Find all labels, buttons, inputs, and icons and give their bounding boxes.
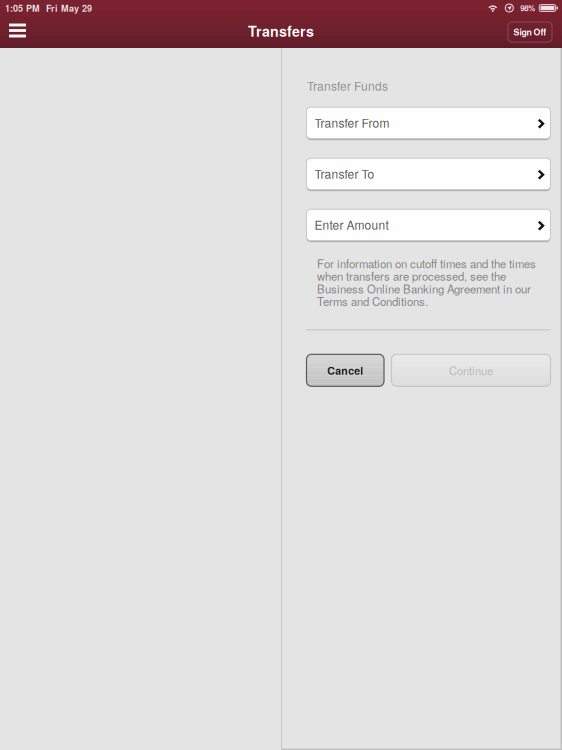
button[interactable]: Transfer To: [306, 158, 550, 191]
staticText: Fri May 29: [46, 1, 92, 14]
button[interactable]: Menu: [0, 18, 38, 46]
staticText: Transfer From: [314, 114, 389, 131]
button[interactable]: Sign Off: [508, 22, 552, 42]
staticText: For information on cutoff times and the …: [317, 255, 536, 309]
button[interactable]: Transfer From: [306, 107, 550, 140]
staticText: Cancel: [327, 363, 363, 378]
staticText: Continue: [449, 362, 493, 378]
button[interactable]: Cancel: [306, 354, 384, 386]
staticText: Transfer Funds: [307, 77, 388, 94]
staticText: 98%: [520, 2, 535, 14]
button[interactable]: Enter Amount: [306, 209, 550, 242]
staticText: Transfers: [248, 21, 314, 41]
staticText: Sign Off: [513, 26, 546, 38]
staticText: 1:05 PM: [5, 1, 40, 14]
staticText: Transfer To: [314, 165, 374, 182]
staticText: Enter Amount: [314, 216, 388, 233]
button[interactable]: Continue: [391, 354, 550, 386]
